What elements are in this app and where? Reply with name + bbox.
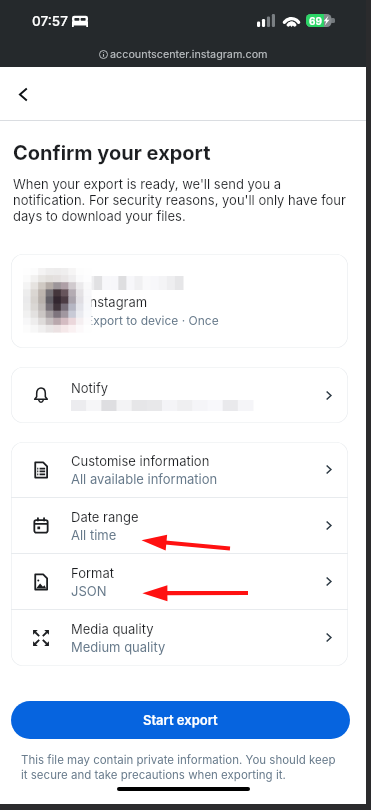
staticText: Medium quality: [71, 639, 166, 655]
staticText: accountscenter.instagram.com: [110, 48, 268, 61]
button[interactable]: Customise information: [11, 442, 348, 497]
staticText: All time: [71, 527, 117, 543]
staticText: Confirm your export: [13, 141, 211, 165]
staticText: 07:57: [32, 13, 68, 29]
staticText: Customise information: [71, 453, 210, 469]
staticText: JSON: [71, 583, 107, 599]
staticText: Instagram: [86, 294, 148, 310]
button[interactable]: Date range: [11, 498, 348, 553]
staticText: This file may contain private informatio…: [21, 753, 342, 782]
staticText: Date range: [71, 509, 139, 525]
button[interactable]: Media quality: [11, 610, 348, 665]
staticText: Media quality: [71, 621, 154, 637]
button[interactable]: Start export: [11, 701, 350, 739]
staticText: Export to device · Once: [86, 313, 219, 328]
staticText: 69: [309, 15, 322, 27]
staticText: Start export: [143, 712, 218, 728]
staticText: Notify: [71, 380, 109, 396]
button[interactable]: Back: [0, 71, 46, 117]
staticText: When your export is ready, we'll send yo…: [13, 176, 348, 224]
button[interactable]: Format: [11, 554, 348, 609]
staticText: All available information: [71, 471, 218, 487]
button[interactable]: Notify: [11, 367, 348, 423]
staticText: Format: [71, 565, 114, 581]
